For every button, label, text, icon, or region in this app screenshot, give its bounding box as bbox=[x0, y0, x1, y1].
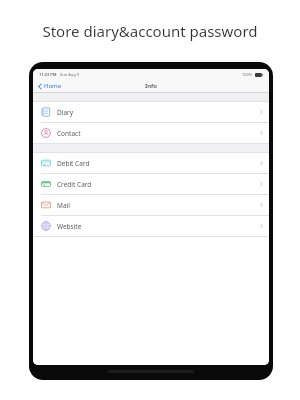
staticText: Credit Card bbox=[57, 180, 92, 189]
button[interactable]: Credit Card bbox=[33, 174, 269, 194]
staticText: 11:23 PM bbox=[39, 72, 57, 77]
button[interactable]: Debit Card bbox=[33, 153, 269, 173]
staticText: Debit Card bbox=[57, 159, 90, 168]
staticText: Store diary&account password bbox=[42, 21, 258, 41]
other: Open Credit Card bbox=[260, 181, 263, 187]
button[interactable]: Diary bbox=[33, 102, 269, 122]
staticText: Diary bbox=[57, 108, 74, 117]
other: Open Mail bbox=[260, 202, 263, 208]
staticText: Contact bbox=[57, 129, 81, 138]
other: Open Diary bbox=[260, 109, 263, 115]
staticText: Info bbox=[145, 82, 157, 90]
button[interactable]: Website bbox=[33, 216, 269, 236]
other: Open Website bbox=[260, 223, 263, 229]
button[interactable]: Home bbox=[33, 80, 66, 92]
other: Open Debit Card bbox=[260, 160, 263, 166]
button[interactable]: Mail bbox=[33, 195, 269, 215]
staticText: Home bbox=[44, 82, 62, 90]
staticText: Website bbox=[57, 222, 82, 231]
staticText: 100% bbox=[242, 72, 253, 77]
staticText: Mail bbox=[57, 201, 70, 210]
button[interactable]: Contact bbox=[33, 123, 269, 143]
staticText: Sun Aug 9 bbox=[60, 72, 79, 77]
other: Open Contact bbox=[260, 130, 263, 136]
